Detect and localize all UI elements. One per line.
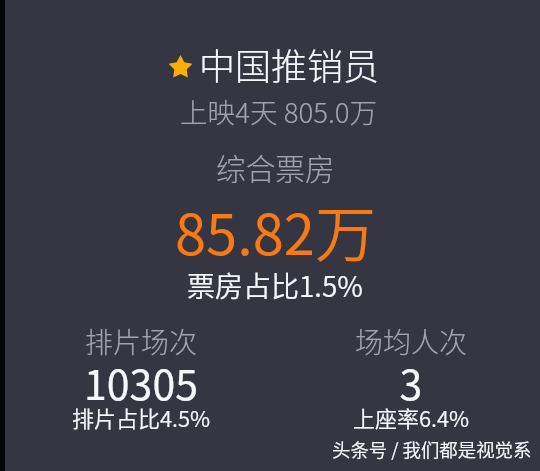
staticText: 排片占比4.5% <box>20 401 262 433</box>
staticText: 上座率6.4% <box>290 401 532 433</box>
staticText: 上映4天 805.0万 <box>180 91 378 131</box>
staticText: 场均人次 <box>290 321 532 362</box>
staticText: 万 <box>315 186 377 274</box>
staticText: 票房占比1.5% <box>187 265 363 306</box>
button[interactable] <box>20 318 262 432</box>
button[interactable] <box>290 318 532 432</box>
button[interactable]: 头条号 / 我们都是视觉系 <box>332 436 532 463</box>
button[interactable]: Favourite film <box>168 55 193 80</box>
button[interactable]: Favourite film <box>168 38 380 90</box>
staticText: 10305 <box>20 352 262 411</box>
staticText: 85.82 <box>175 190 315 271</box>
staticText: 中国推销员 <box>199 38 380 90</box>
button[interactable]: 85.82 <box>175 190 377 278</box>
staticText: 3 <box>290 352 532 411</box>
staticText: 综合票房 <box>216 146 335 189</box>
staticText: 排片场次 <box>20 321 262 362</box>
